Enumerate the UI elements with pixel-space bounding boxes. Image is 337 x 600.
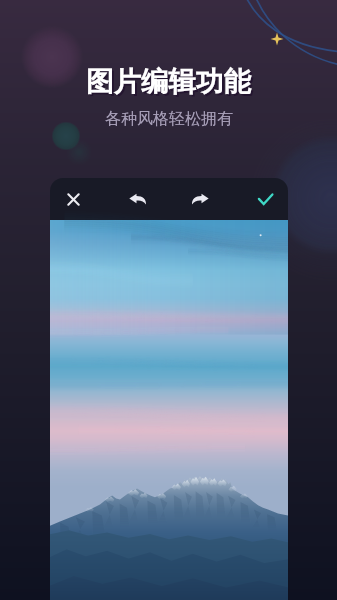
- staticText: 图片编辑功能: [88, 67, 253, 102]
- staticText: 图片编辑功能: [86, 65, 251, 100]
- button[interactable]: Redo: [182, 181, 218, 217]
- button[interactable]: Close: [55, 181, 91, 217]
- staticText: 各种风格轻松拥有: [105, 109, 233, 129]
- button[interactable]: Confirm: [247, 181, 283, 217]
- button[interactable]: Undo: [119, 181, 155, 217]
